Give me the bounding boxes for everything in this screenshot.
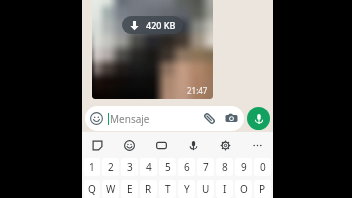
button[interactable]: 3 [121,158,138,176]
button[interactable]: 8 [216,158,233,176]
staticText: 0 [260,160,266,174]
button[interactable]: GIF [145,132,177,158]
staticText: I [223,182,227,196]
button[interactable]: W [102,180,119,198]
staticText: 7 [203,160,209,174]
staticText: 420 KB [146,19,176,31]
button[interactable]: I [216,180,233,198]
staticText: 8 [222,160,228,174]
button[interactable]: 2 [102,158,119,176]
button[interactable]: Sticker [82,132,113,158]
button[interactable]: 0 [254,158,271,176]
button[interactable]: Mensaje [85,106,244,131]
button[interactable]: More [241,132,273,158]
button[interactable]: 5 [159,158,176,176]
staticText: E [127,182,133,196]
staticText: Y [184,182,190,196]
staticText: Mensaje [110,112,150,126]
staticText: 6 [184,160,190,174]
button[interactable]: 1 [84,158,100,176]
button[interactable]: P [254,180,271,198]
staticText: 3 [127,160,133,174]
staticText: W [106,182,116,196]
button[interactable]: Download 420 KB [122,16,183,34]
button[interactable]: U [197,180,214,198]
button[interactable]: Emoji [113,132,145,158]
button[interactable]: Settings [209,132,241,158]
button[interactable]: 7 [197,158,214,176]
staticText: 4 [146,160,152,174]
button[interactable]: Y [178,180,195,198]
button[interactable]: E [121,180,138,198]
button[interactable]: 6 [178,158,195,176]
button[interactable]: T [159,180,176,198]
staticText: 5 [165,160,171,174]
staticText: U [202,182,210,196]
button[interactable]: O [235,180,252,198]
staticText: 9 [241,160,247,174]
button[interactable]: R [140,180,157,198]
button[interactable]: 4 [140,158,157,176]
staticText: R [145,182,152,196]
staticText: O [240,182,248,196]
staticText: 21:47 [187,85,208,96]
button[interactable]: Voice input [177,132,209,158]
staticText: P [259,182,266,196]
staticText: 1 [89,160,95,174]
button[interactable]: 9 [235,158,252,176]
staticText: 2 [108,160,114,174]
other: Attach [203,112,216,125]
button[interactable]: Q [84,180,100,198]
staticText: Q [88,182,96,196]
other: Camera [225,112,238,125]
staticText: T [165,182,171,196]
button[interactable]: Voice message [247,107,270,130]
